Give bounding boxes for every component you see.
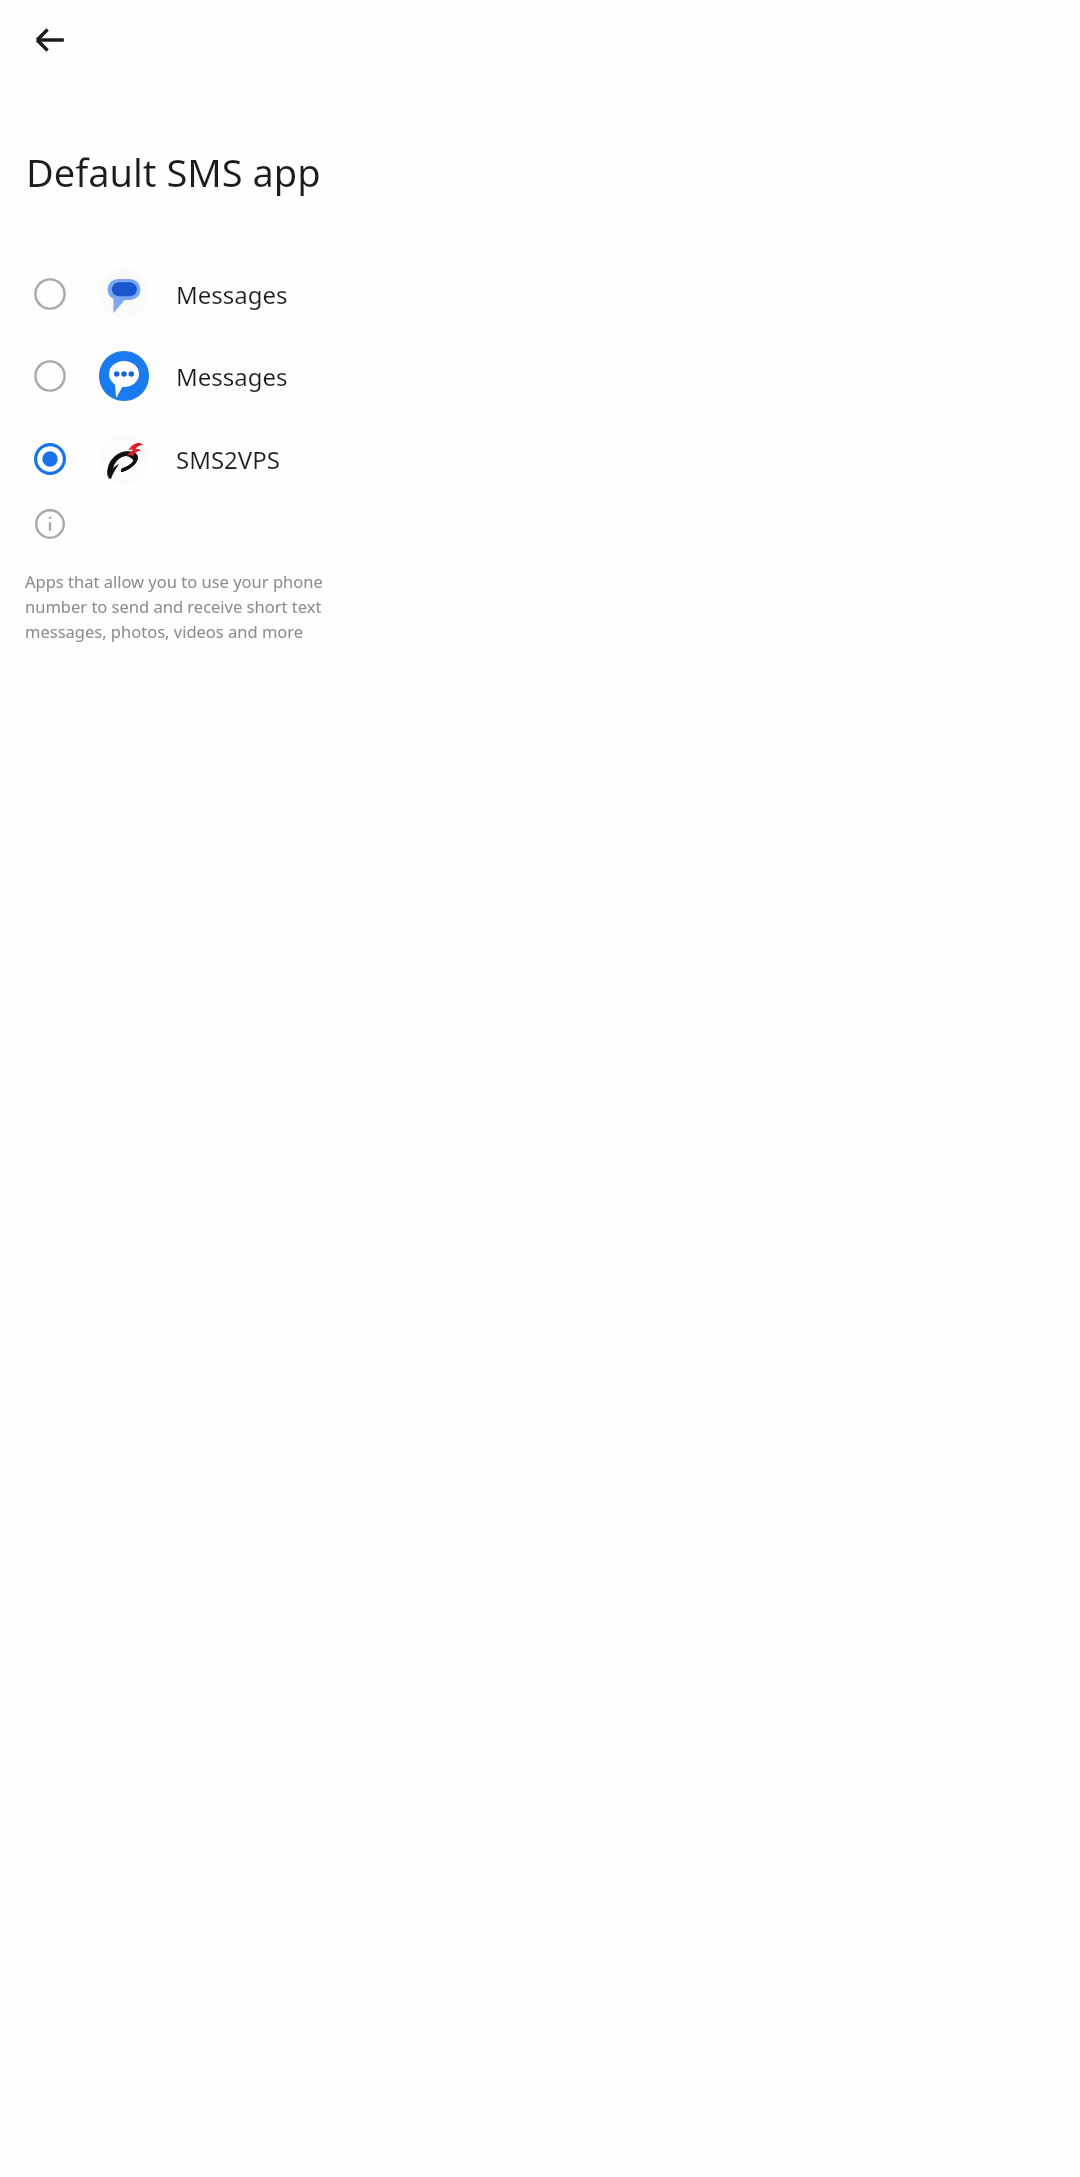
staticText: SMS2VPS xyxy=(176,443,280,476)
staticText: Messages xyxy=(176,278,288,311)
button[interactable]: SMS2VPS xyxy=(0,418,1080,500)
button[interactable]: Messages xyxy=(0,335,1080,417)
staticText: Default SMS app xyxy=(26,146,321,198)
button[interactable]: Back xyxy=(18,8,82,72)
staticText: Apps that allow you to use your phone nu… xyxy=(25,570,377,642)
other: Information xyxy=(26,500,74,548)
button[interactable]: Messages xyxy=(0,253,1080,335)
staticText: Messages xyxy=(176,360,288,393)
